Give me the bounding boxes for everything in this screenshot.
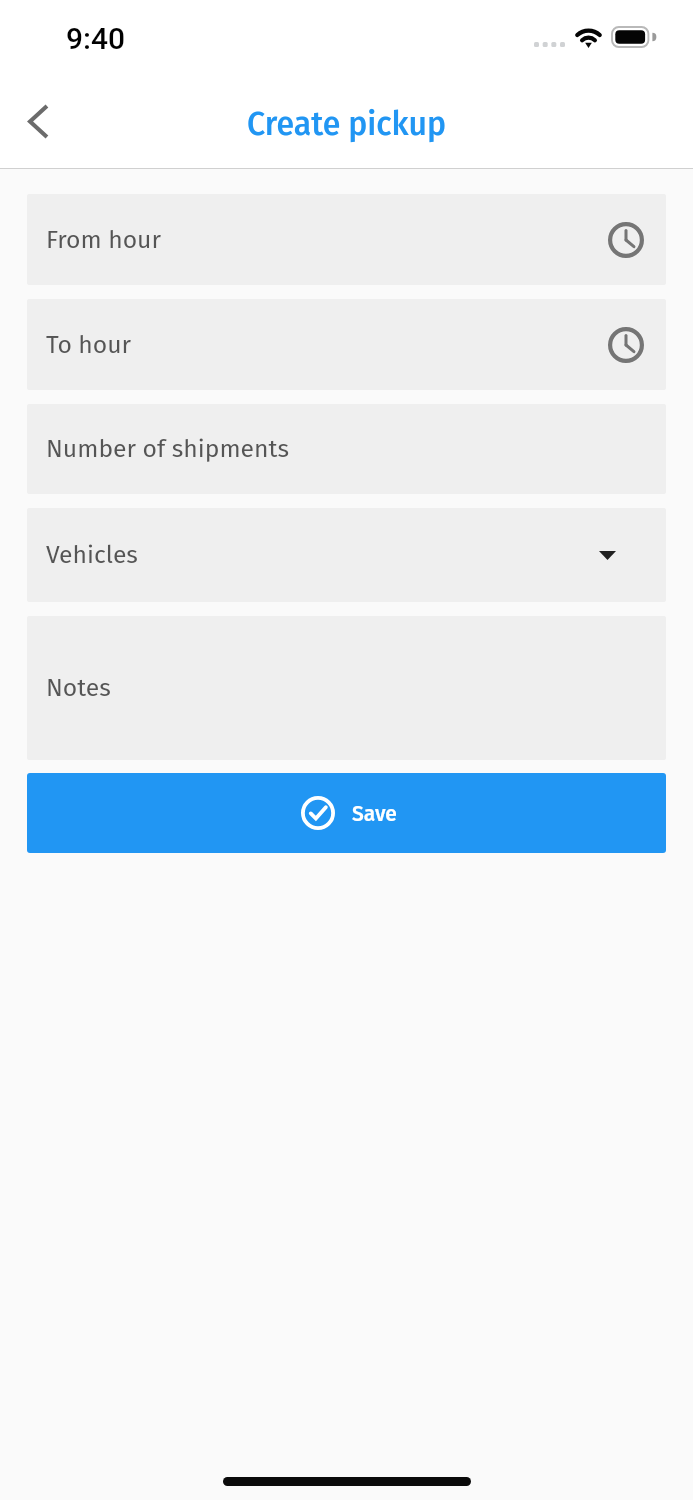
button[interactable]: Number of shipments <box>27 404 666 494</box>
other: Expand <box>599 551 616 560</box>
button[interactable]: Back <box>10 93 66 149</box>
staticText: Number of shipments <box>46 434 289 464</box>
staticText: From hour <box>46 225 161 255</box>
other: Pick time <box>608 327 644 363</box>
staticText: Notes <box>46 673 111 703</box>
button[interactable]: Save <box>27 773 666 853</box>
staticText: Save <box>352 801 397 826</box>
staticText: To hour <box>46 330 132 360</box>
staticText: 9:40 <box>66 21 126 56</box>
staticText: Create pickup <box>247 105 446 143</box>
button[interactable]: Vehicles <box>27 508 666 602</box>
staticText: Vehicles <box>46 540 138 570</box>
button[interactable]: To hour <box>27 299 666 390</box>
other: Pick time <box>608 222 644 258</box>
button[interactable]: Notes <box>27 616 666 760</box>
button[interactable]: From hour <box>27 194 666 285</box>
